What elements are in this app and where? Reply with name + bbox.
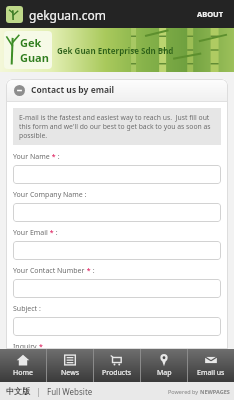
staticText: Contact us by email [31,84,115,96]
button[interactable]: Email us [188,349,234,382]
staticText: Your Email [13,228,48,238]
staticText: E-mail is the fastest and easiest way to… [19,113,215,140]
button[interactable]: News [47,349,93,382]
staticText: Map [157,368,172,378]
staticText: Products [102,368,132,378]
staticText: : [91,266,95,276]
staticText: gekguan.com [29,7,106,23]
button[interactable]: Products [94,349,140,382]
staticText: : [54,228,58,238]
button[interactable]: Contact us by email [6,79,228,101]
button[interactable] [13,279,221,298]
button[interactable] [13,317,221,336]
staticText: Inquiry [13,342,39,349]
staticText: * [48,228,54,238]
staticText: Your Company Name : [13,190,87,200]
staticText: Your Contact Number [13,266,85,276]
button[interactable]: gekguan.com [6,6,106,23]
button[interactable]: Map [141,349,187,382]
button[interactable]: Gek [4,31,174,69]
staticText: * [50,152,56,162]
staticText: Powered by [168,388,200,395]
button[interactable]: Full Website [45,386,95,397]
staticText: ABOUT [197,9,224,19]
staticText: Your Name [13,152,50,162]
button[interactable]: Home [0,349,46,382]
button[interactable]: 中文版 [4,386,32,396]
button[interactable] [13,203,221,222]
staticText: Gek Guan Enterprise Sdn Bhd [57,45,174,56]
staticText: Home [13,368,33,378]
staticText: : [56,152,60,162]
staticText: Email us [197,368,225,378]
button[interactable]: ABOUT [187,3,234,25]
staticText: | [32,386,45,397]
staticText: Subject : [13,304,41,314]
staticText: Guan [20,50,49,65]
staticText: NEWPAGES [200,388,230,395]
staticText: Full Website [47,386,93,397]
staticText: 中文版 [6,386,30,396]
staticText: * [39,342,43,349]
staticText: Gek [20,35,42,50]
button[interactable] [13,165,221,184]
staticText: News [61,368,79,378]
button[interactable] [13,241,221,260]
staticText: * [85,266,91,276]
